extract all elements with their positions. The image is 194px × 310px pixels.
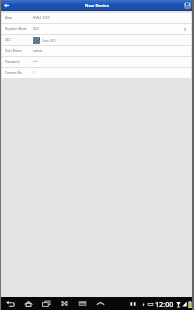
button[interactable]: Scan UID (33, 37, 56, 44)
button[interactable]: Register Mode (2, 24, 191, 34)
staticText: 12:00 (155, 299, 174, 309)
staticText: Camera No. (5, 71, 23, 75)
staticText: admin (33, 49, 43, 53)
staticText: UID (33, 27, 39, 31)
staticText: 1 (33, 71, 35, 75)
staticText: Register Mode (5, 27, 27, 31)
staticText: UID (5, 38, 11, 42)
staticText: NVR4-7200 (33, 16, 50, 20)
button[interactable]: Screenshot (55, 297, 73, 310)
staticText: Password (5, 60, 20, 64)
button[interactable]: Back (1, 297, 19, 310)
staticText: User Name (5, 49, 22, 53)
staticText: New Device (85, 3, 110, 9)
button[interactable]: Back (1, 0, 12, 11)
button[interactable]: Hide (91, 297, 109, 310)
staticText: Alias (5, 16, 12, 20)
button[interactable]: Keyboard (73, 297, 91, 310)
button[interactable]: Home (19, 297, 37, 310)
button[interactable]: UID (2, 35, 191, 45)
button[interactable]: Alias (2, 13, 191, 23)
staticText: Scan UID (42, 39, 56, 43)
button[interactable]: Camera No. (2, 68, 191, 78)
staticText: •••• (33, 60, 38, 64)
button[interactable]: Recent apps (37, 297, 55, 310)
button[interactable]: Password (2, 57, 191, 67)
button[interactable]: Save (183, 1, 192, 10)
button[interactable]: User Name (2, 46, 191, 56)
